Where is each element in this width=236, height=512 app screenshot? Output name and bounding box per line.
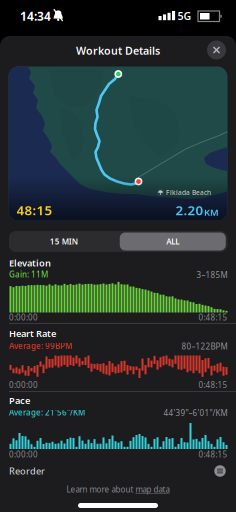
staticText: Reorder — [9, 465, 45, 477]
staticText: Elevation — [9, 257, 51, 269]
button[interactable]: 15 MIN — [9, 231, 118, 252]
staticText: Workout Details — [76, 43, 160, 58]
staticText: 14:34 — [20, 8, 51, 24]
staticText: Average: 99BPM — [9, 341, 72, 351]
staticText: ALL — [166, 236, 179, 247]
staticText: 80–122BPM — [181, 341, 227, 352]
staticText: 5G — [177, 9, 191, 23]
button[interactable]: map data — [135, 484, 169, 495]
staticText: Fikiada Beach — [166, 188, 211, 197]
staticText: map data — [135, 484, 169, 495]
staticText: 0:00:00 — [9, 312, 38, 323]
staticText: Gain: 11M — [9, 269, 48, 280]
staticText: 0:00:00 — [9, 380, 38, 390]
staticText: Learn more about — [66, 484, 135, 495]
staticText: 0:48:15 — [198, 312, 227, 323]
button[interactable]: Reorder — [0, 461, 236, 481]
staticText: 44'39"–6'01"/KM — [163, 408, 227, 418]
staticText: 2.20 — [175, 201, 203, 219]
staticText: 15 MIN — [50, 236, 78, 247]
button[interactable]: Close — [207, 40, 226, 59]
staticText: Heart Rate — [9, 327, 56, 340]
staticText: 0:48:15 — [198, 380, 227, 390]
staticText: Pace — [9, 394, 30, 407]
staticText: 0:00:00 — [9, 449, 38, 460]
staticText: 3–185M — [196, 270, 227, 280]
button[interactable]: ALL — [118, 231, 227, 252]
staticText: Average: 21'56"/KM — [9, 407, 85, 418]
staticText: KM — [204, 206, 219, 218]
staticText: 48:15 — [16, 201, 52, 219]
staticText: 0:48:15 — [198, 449, 227, 460]
